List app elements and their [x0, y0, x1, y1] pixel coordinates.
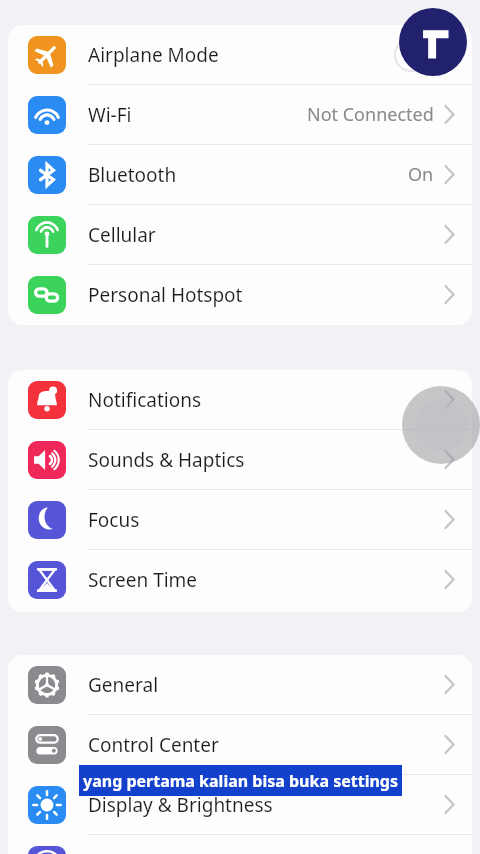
button[interactable]: Focus: [8, 490, 472, 549]
button[interactable]: Bluetooth: [8, 145, 472, 204]
button[interactable]: Airplane Mode toggle: [394, 38, 454, 72]
staticText: Cellular: [88, 222, 156, 248]
staticText: Notifications: [88, 387, 202, 413]
button[interactable]: Accessibility: [8, 835, 472, 854]
staticText: Not Connected: [307, 102, 434, 127]
button[interactable]: Channel logo: [399, 8, 467, 76]
button[interactable]: yang pertama kalian bisa buka settings: [79, 765, 402, 796]
button[interactable]: General: [8, 655, 472, 714]
staticText: Focus: [88, 507, 140, 533]
button[interactable]: Wi-Fi: [8, 85, 472, 144]
button[interactable]: Personal Hotspot: [8, 265, 472, 324]
button[interactable]: Notifications: [8, 370, 472, 429]
button[interactable]: Display & Brightness: [8, 775, 472, 834]
staticText: Wi-Fi: [88, 102, 132, 128]
button[interactable]: Control Center: [8, 715, 472, 774]
button[interactable]: Cellular: [8, 205, 472, 264]
staticText: Airplane Mode: [88, 42, 219, 68]
staticText: Display & Brightness: [88, 792, 273, 818]
staticText: Control Center: [88, 732, 219, 758]
button[interactable]: Sounds & Haptics: [8, 430, 472, 489]
button[interactable]: Airplane Mode: [8, 25, 472, 84]
staticText: General: [88, 672, 159, 698]
button[interactable]: Screen Time: [8, 550, 472, 609]
staticText: Screen Time: [88, 567, 198, 593]
staticText: On: [408, 162, 434, 187]
staticText: Sounds & Haptics: [88, 447, 245, 473]
staticText: Personal Hotspot: [88, 282, 243, 308]
staticText: yang pertama kalian bisa buka settings: [83, 770, 398, 792]
staticText: Bluetooth: [88, 162, 177, 188]
